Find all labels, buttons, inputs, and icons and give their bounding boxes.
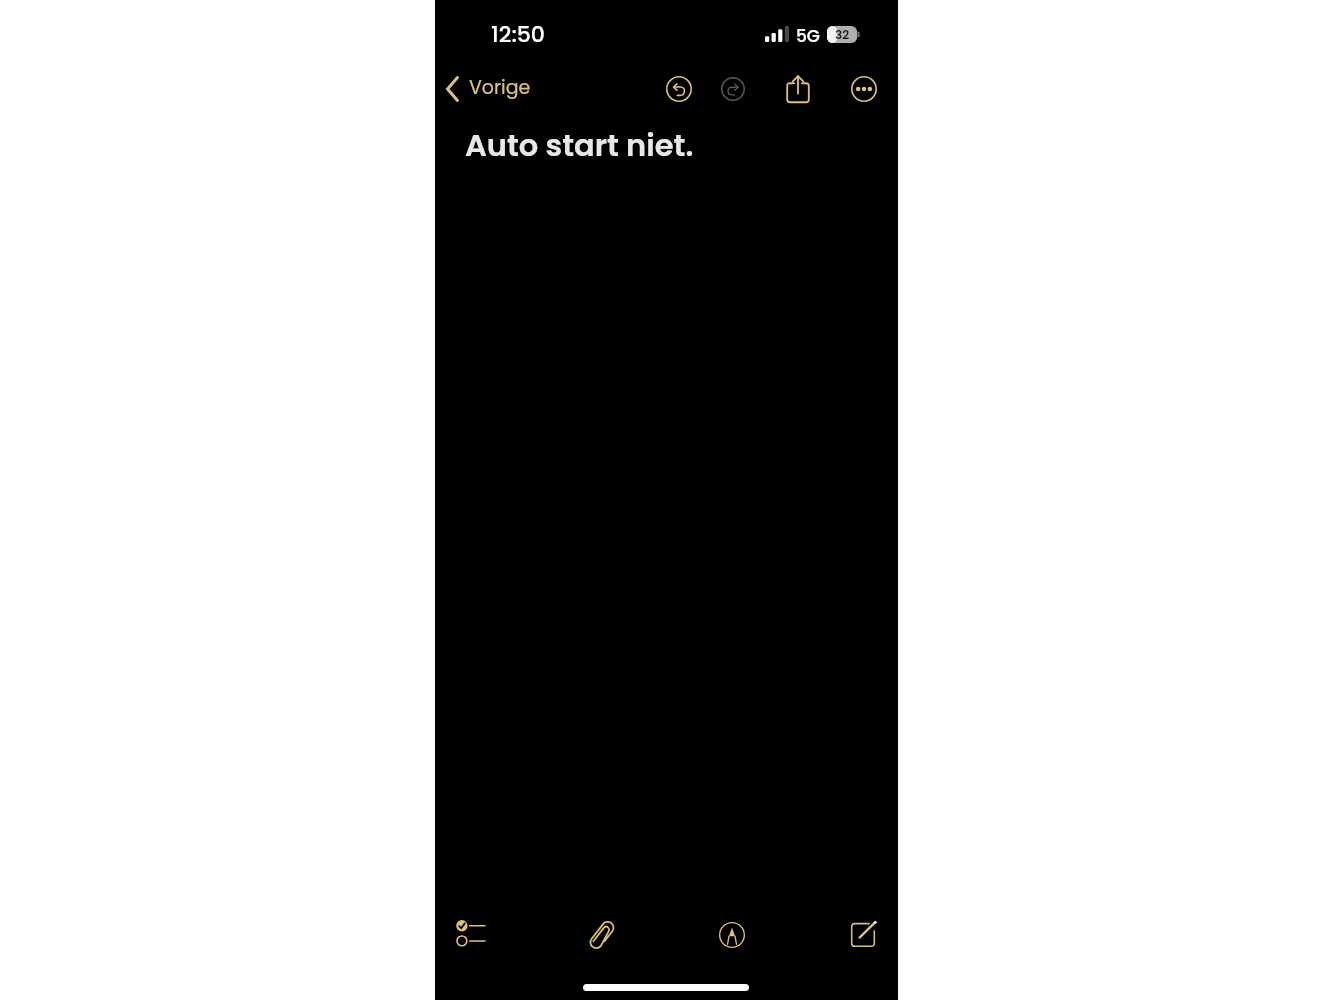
button[interactable]: Undo [655, 65, 703, 113]
button[interactable]: Markup [705, 910, 759, 960]
staticText: Auto start niet. [465, 124, 694, 167]
staticText: 5G [796, 24, 821, 48]
staticText: 12:50 [491, 19, 545, 50]
staticText: Vorige [469, 74, 531, 101]
button[interactable]: Checklist [444, 910, 498, 960]
staticText: 32 [835, 26, 850, 43]
button[interactable]: New note [837, 909, 891, 959]
button[interactable]: Vorige [439, 70, 538, 107]
button[interactable]: Attach file [575, 910, 629, 960]
button[interactable]: Share [774, 65, 822, 113]
button[interactable]: More [840, 65, 888, 113]
button[interactable]: Redo [709, 65, 757, 113]
